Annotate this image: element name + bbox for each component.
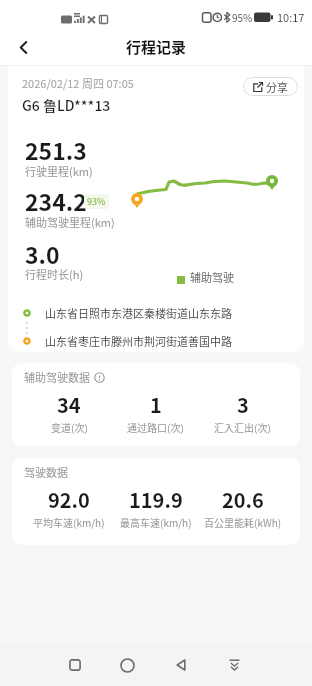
- staticText: 行程记录: [126, 36, 187, 58]
- staticText: 3: [237, 390, 249, 419]
- staticText: 山东省日照市东港区秦楼街道山东东路: [45, 305, 232, 321]
- staticText: 汇入汇出(次): [214, 420, 271, 434]
- staticText: 95%: [232, 10, 253, 24]
- staticText: 山东省枣庄市滕州市荆河街道善国中路: [45, 333, 232, 349]
- staticText: 10:17: [277, 9, 305, 25]
- staticText: 辅助驾驶: [190, 269, 234, 285]
- staticText: 119.9: [129, 485, 183, 514]
- staticText: 251.3: [25, 133, 87, 166]
- staticText: 变道(次): [51, 420, 88, 434]
- button[interactable]: 山东省枣庄市滕州市荆河街道善国中路: [19, 333, 304, 349]
- staticText: 通过路口(次): [127, 420, 184, 434]
- staticText: 2026/02/12 周四 07:05: [22, 75, 134, 91]
- staticText: 93%: [87, 195, 106, 208]
- button[interactable]: [110, 648, 144, 682]
- staticText: 平均车速(km/h): [33, 515, 105, 529]
- button[interactable]: [164, 648, 198, 682]
- staticText: 234.2: [25, 184, 87, 217]
- staticText: 92.0: [48, 485, 90, 514]
- button[interactable]: 驾驶数据: [12, 458, 300, 545]
- staticText: 辅助驾驶数据: [24, 369, 90, 385]
- button[interactable]: [217, 648, 251, 682]
- button[interactable]: [8, 32, 38, 62]
- button[interactable]: 山东省日照市东港区秦楼街道山东东路: [19, 305, 304, 321]
- button[interactable]: 分享: [243, 77, 298, 96]
- staticText: 3.0: [25, 237, 60, 270]
- staticText: 行驶里程(km): [25, 163, 93, 179]
- staticText: 20.6: [222, 485, 264, 514]
- staticText: 分享: [266, 79, 288, 95]
- button[interactable]: 辅助驾驶数据: [12, 363, 300, 446]
- button[interactable]: [58, 648, 92, 682]
- staticText: 34: [57, 390, 81, 419]
- staticText: 驾驶数据: [24, 464, 68, 480]
- staticText: 百公里能耗(kWh): [204, 515, 282, 529]
- staticText: G6 鲁LD***13: [22, 95, 111, 115]
- staticText: 1: [150, 390, 162, 419]
- staticText: 行程时长(h): [25, 266, 84, 282]
- staticText: 最高车速(km/h): [120, 515, 192, 529]
- staticText: 辅助驾驶里程(km): [25, 214, 115, 230]
